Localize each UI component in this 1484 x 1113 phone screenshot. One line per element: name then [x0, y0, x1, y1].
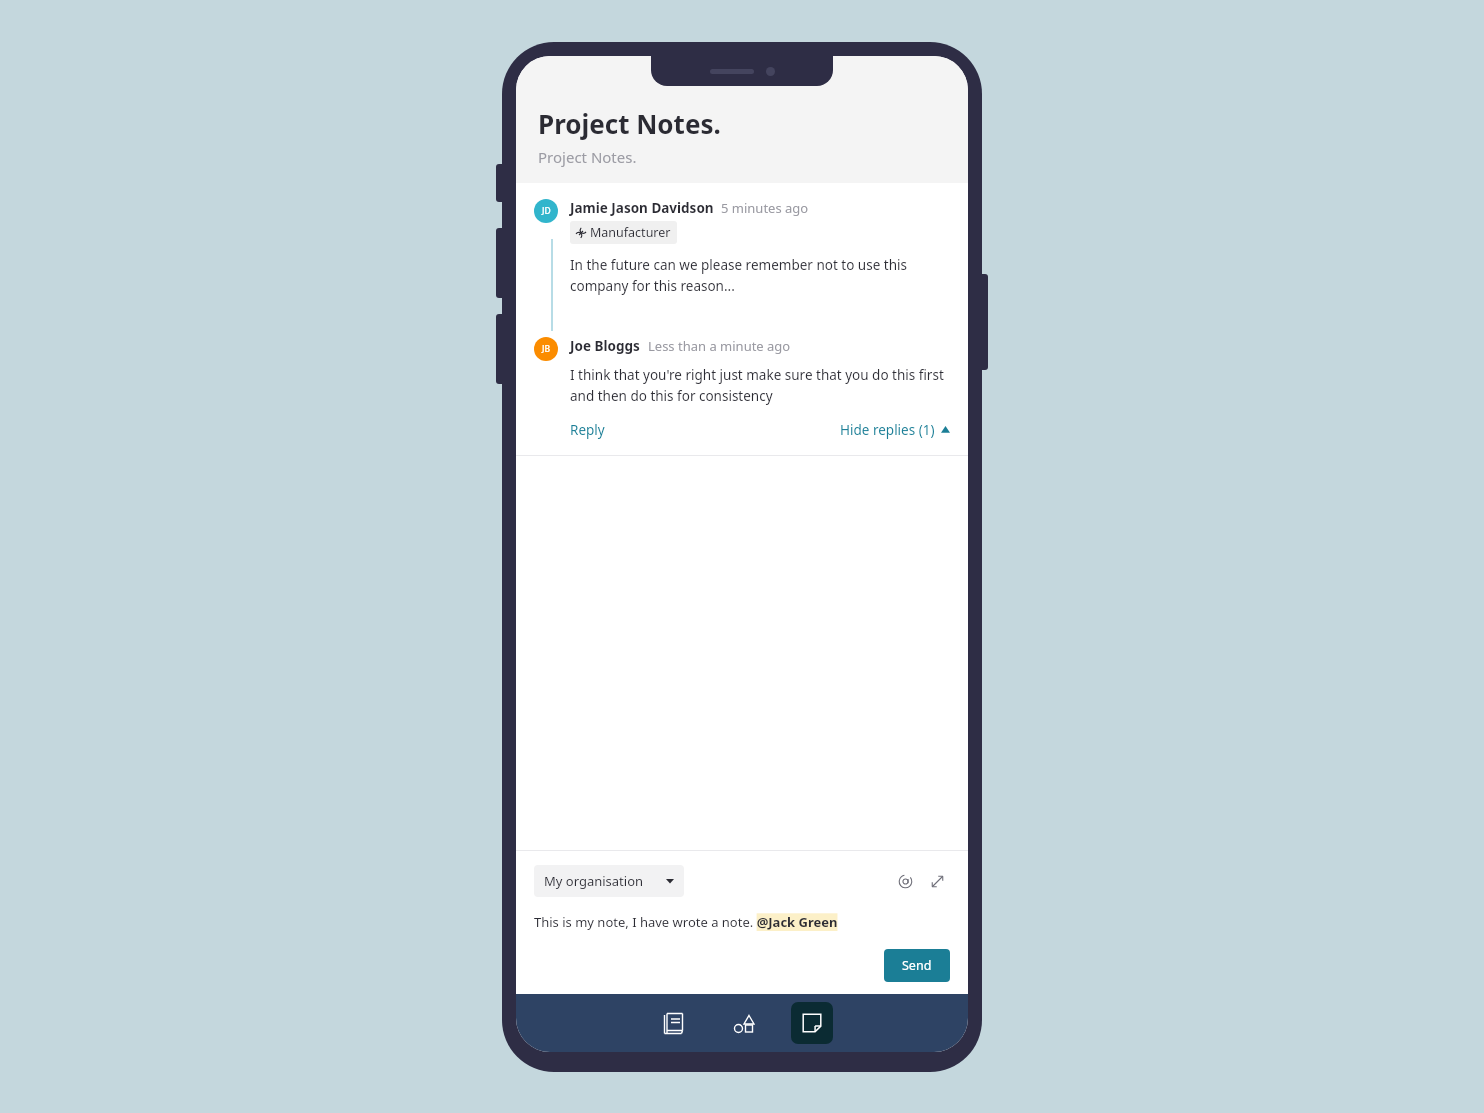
staticText: Less than a minute ago [648, 337, 791, 355]
button[interactable]: Library [651, 1001, 695, 1045]
staticText: Hide replies (1) [840, 421, 935, 439]
staticText: In the future can we please remember not… [570, 256, 950, 295]
button[interactable]: My organisation [534, 865, 684, 897]
button[interactable]: Expand editor [924, 868, 950, 894]
button[interactable]: Hide replies (1) [840, 421, 950, 439]
button[interactable]: Reply [570, 421, 605, 439]
staticText: Project Notes. [538, 106, 721, 141]
button[interactable]: Notes [791, 1002, 833, 1044]
staticText: My organisation [544, 872, 644, 890]
staticText: Manufacturer [590, 224, 671, 241]
button[interactable]: Send [884, 949, 950, 982]
staticText: Project Notes. [538, 147, 637, 167]
staticText: 5 minutes ago [721, 199, 809, 217]
staticText: JB [542, 343, 551, 355]
button[interactable]: Manufacturer [570, 221, 677, 244]
staticText: Jamie Jason Davidson [570, 199, 714, 217]
staticText: JD [542, 205, 551, 217]
staticText: Send [902, 957, 932, 974]
staticText: Joe Bloggs [570, 337, 640, 355]
staticText: Reply [570, 421, 605, 439]
button[interactable]: Shapes [723, 1001, 767, 1045]
staticText: I think that you're right just make sure… [570, 366, 950, 405]
staticText: This is my note, I have wrote a note. @J… [534, 913, 838, 931]
button[interactable]: Mention someone [892, 868, 918, 894]
